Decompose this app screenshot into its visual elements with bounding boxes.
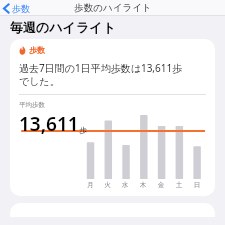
staticText: 歩数 [29, 45, 45, 55]
staticText: 過去7日間の1日平均歩数は13,611歩 でした。 [19, 61, 183, 88]
staticText: 木 [134, 181, 152, 189]
staticText: 金 [152, 181, 170, 189]
staticText: 土 [170, 181, 188, 189]
staticText: 火 [99, 181, 116, 189]
button[interactable]: 歩数 [10, 39, 215, 196]
staticText: 水 [116, 181, 134, 189]
staticText: 毎週のハイライト [10, 19, 116, 35]
staticText: 歩 [79, 125, 87, 135]
staticText: 歩数 [12, 3, 30, 14]
staticText: 月 [82, 181, 99, 189]
staticText: 平均歩数 [19, 101, 45, 109]
other: Back [3, 3, 10, 14]
staticText: 日 [188, 181, 206, 189]
button[interactable]: Back [0, 2, 34, 15]
staticText: 歩数のハイライト [74, 2, 152, 14]
staticText: 13,611 [19, 111, 79, 137]
